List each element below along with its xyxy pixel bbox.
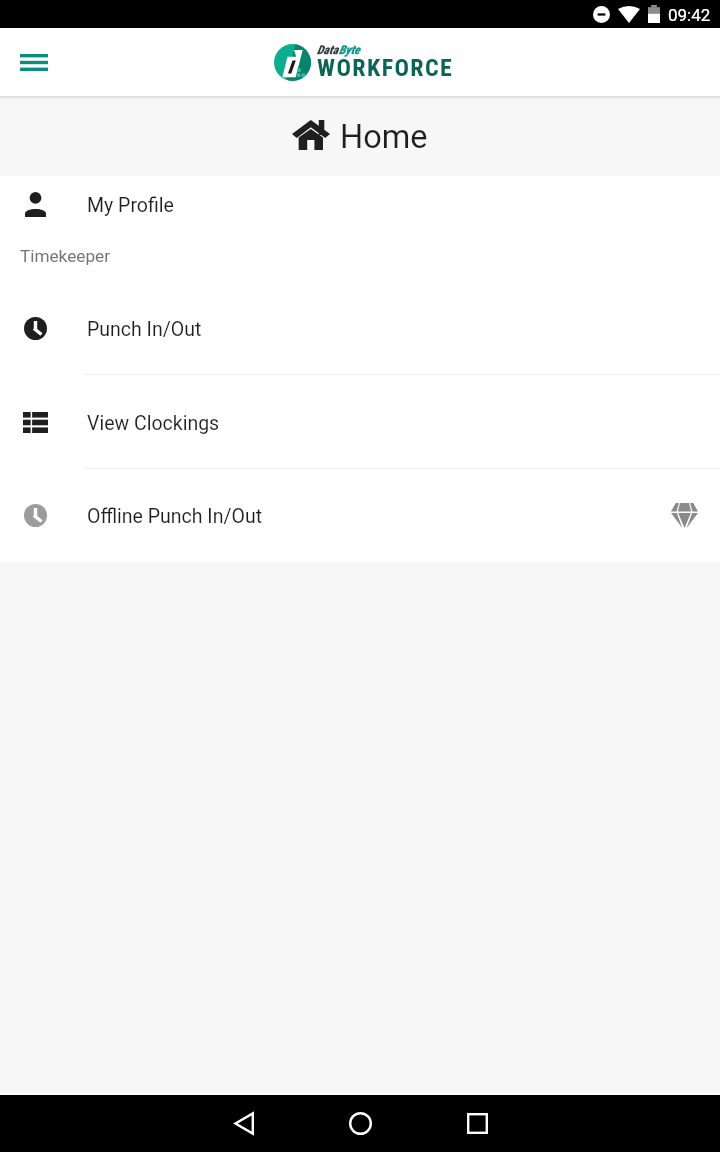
button[interactable]: Recent apps [419,1095,535,1152]
staticText: Byte [339,43,360,57]
button[interactable]: Punch In/Out [0,281,720,375]
button[interactable]: Open navigation menu [6,34,62,90]
staticText: My Profile [87,194,174,217]
button[interactable]: Offline Punch In/Out [0,469,720,562]
staticText: 09:42 [668,5,711,25]
staticText: Home [340,118,428,156]
staticText: Offline Punch In/Out [87,505,263,528]
staticText: Timekeeper [20,246,110,266]
staticText: WORKFORCE [317,54,454,82]
button[interactable]: Home [302,1095,418,1152]
button[interactable]: My Profile [0,176,720,232]
staticText: View Clockings [87,412,220,435]
button[interactable]: View Clockings [0,375,720,469]
staticText: Data [317,43,339,57]
button[interactable]: Back [186,1095,302,1152]
staticText: Punch In/Out [87,318,202,341]
